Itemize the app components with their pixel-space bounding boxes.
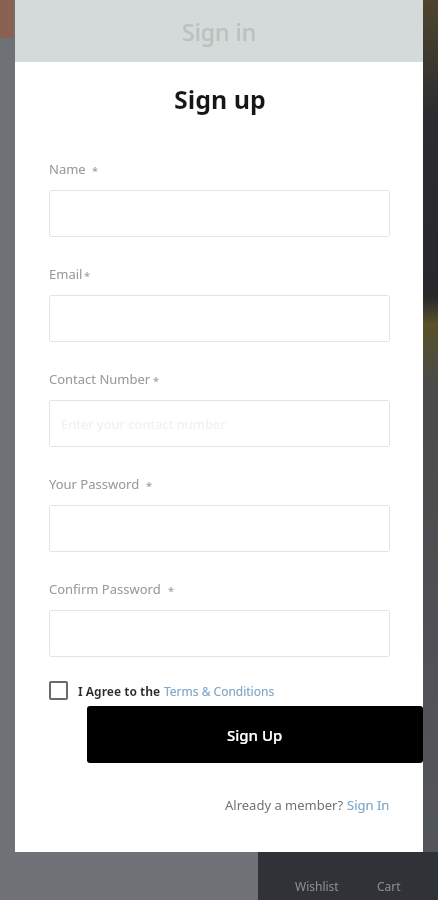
button[interactable] (49, 295, 390, 342)
staticText: Already a member? (225, 796, 347, 814)
staticText: Sign in (182, 16, 257, 47)
staticText: Wishlist (295, 878, 339, 894)
staticText: Sign Up (227, 725, 283, 745)
staticText: Sign up (174, 82, 266, 116)
button[interactable]: Terms & Conditions (164, 683, 275, 699)
staticText: * (84, 268, 91, 283)
staticText: Enter your contact number (61, 415, 226, 433)
staticText: * (153, 373, 160, 388)
button[interactable]: Sign Up (87, 706, 423, 763)
other: Agree to terms checkbox (49, 681, 68, 700)
staticText: * (168, 583, 175, 598)
staticText: Email (49, 265, 83, 283)
staticText: Your Password (49, 475, 140, 493)
staticText: Name (49, 160, 86, 178)
button[interactable] (49, 610, 390, 657)
button[interactable]: Sign in (15, 0, 423, 62)
staticText: Cart (377, 878, 401, 894)
button[interactable]: Agree to terms checkbox (49, 681, 275, 700)
button[interactable] (49, 505, 390, 552)
button[interactable]: Enter your contact number (49, 400, 390, 447)
button[interactable]: Sign In (347, 796, 390, 814)
button[interactable] (49, 190, 390, 237)
staticText: Confirm Password (49, 580, 161, 598)
staticText: * (146, 478, 153, 493)
staticText: * (92, 163, 99, 178)
staticText: Contact Number (49, 370, 151, 388)
staticText: I Agree to the (78, 683, 164, 699)
